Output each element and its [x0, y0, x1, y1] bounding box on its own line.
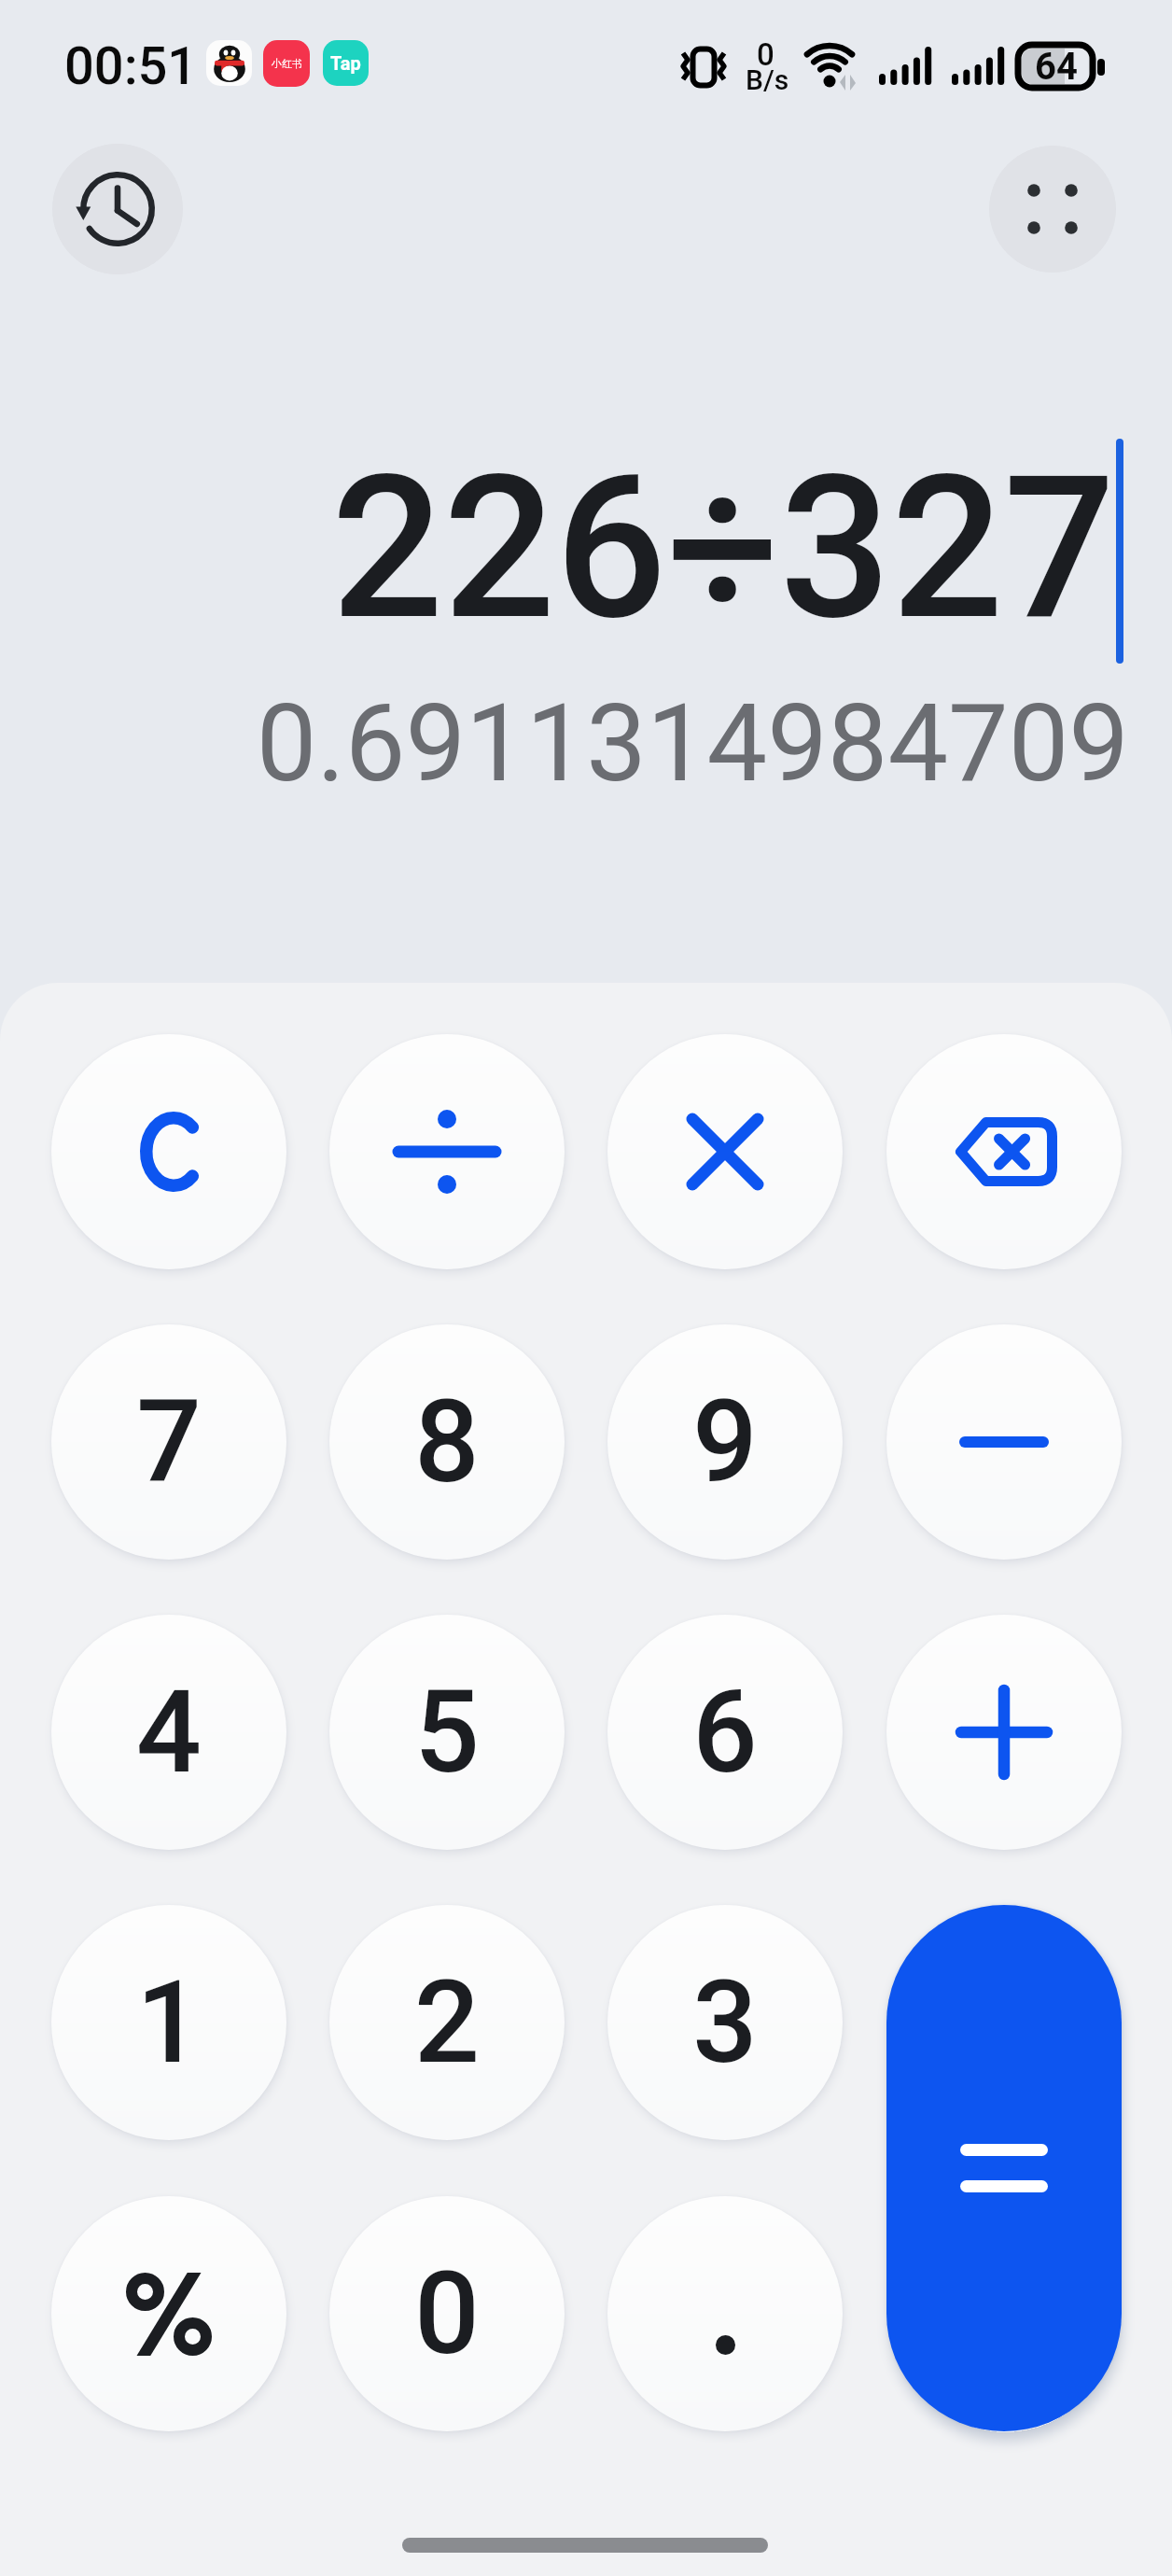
- button[interactable]: More options: [989, 146, 1116, 273]
- staticText: 5: [414, 1665, 480, 1799]
- staticText: 4: [136, 1665, 202, 1799]
- staticText: 0.6911314984709: [0, 680, 1129, 806]
- staticText: 64: [1035, 45, 1078, 89]
- staticText: 3: [692, 1955, 758, 2090]
- button[interactable]: History: [52, 144, 183, 274]
- button[interactable]: Multiply: [607, 1034, 843, 1269]
- staticText: 小红书: [272, 57, 302, 70]
- button[interactable]: 7: [51, 1324, 286, 1560]
- staticText: 8: [414, 1375, 480, 1509]
- staticText: Tap: [330, 52, 361, 74]
- staticText: 0: [757, 36, 774, 73]
- button[interactable]: 6: [607, 1615, 843, 1850]
- staticText: 7: [136, 1375, 202, 1509]
- staticText: B/s: [746, 63, 789, 96]
- button[interactable]: 8: [329, 1324, 565, 1560]
- button[interactable]: Minus: [886, 1324, 1122, 1560]
- staticText: 226÷327: [331, 433, 1116, 664]
- button[interactable]: [607, 2196, 843, 2431]
- button[interactable]: 4: [51, 1615, 286, 1850]
- button[interactable]: Divide: [329, 1034, 565, 1269]
- staticText: 00:51: [64, 35, 198, 97]
- staticText: 2: [414, 1955, 480, 2090]
- button[interactable]: [51, 1034, 286, 1269]
- button[interactable]: Backspace: [886, 1034, 1122, 1269]
- staticText: 0: [414, 2247, 480, 2381]
- staticText: 1: [136, 1955, 202, 2090]
- button[interactable]: 1: [51, 1905, 286, 2140]
- staticText: 9: [692, 1375, 758, 1509]
- staticText: 6: [692, 1665, 758, 1799]
- button[interactable]: Plus: [886, 1615, 1122, 1850]
- button[interactable]: Equals: [886, 1905, 1122, 2431]
- button[interactable]: 2: [329, 1905, 565, 2140]
- button[interactable]: [51, 2196, 286, 2431]
- button[interactable]: 5: [329, 1615, 565, 1850]
- button[interactable]: 3: [607, 1905, 843, 2140]
- button[interactable]: 0: [329, 2196, 565, 2431]
- button[interactable]: 9: [607, 1324, 843, 1560]
